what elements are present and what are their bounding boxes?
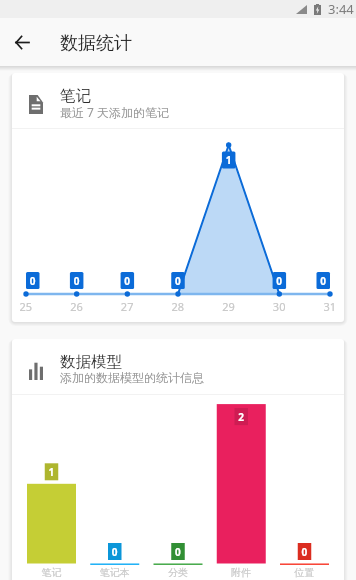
staticText: 添加的数据模型的统计信息 (60, 370, 204, 385)
button[interactable]: 笔记 (12, 73, 344, 322)
button[interactable]: Back (0, 20, 44, 64)
staticText: 数据模型 (60, 352, 122, 372)
button[interactable]: 数据模型 (12, 339, 344, 580)
staticText: 数据统计 (60, 32, 132, 55)
staticText: 笔记 (60, 86, 91, 106)
staticText: 最近 7 天添加的笔记 (60, 104, 170, 120)
staticText: 3:44 (328, 0, 354, 18)
